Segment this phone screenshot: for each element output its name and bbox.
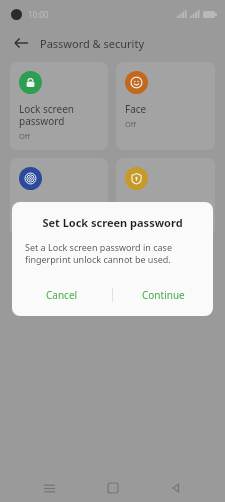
button[interactable]: Recents — [34, 474, 64, 502]
button[interactable]: Face — [116, 62, 215, 150]
staticText: Off — [125, 119, 137, 129]
staticText: Cancel — [46, 288, 78, 302]
staticText: Off — [19, 131, 31, 141]
staticText: System security — [12, 254, 86, 268]
staticText: Lock screen password — [19, 102, 75, 128]
button[interactable]: Back — [10, 32, 32, 54]
staticText: Set a Lock screen password in case finge… — [25, 241, 200, 266]
button[interactable]: Home — [98, 474, 128, 502]
button[interactable]: System security — [0, 244, 225, 278]
button[interactable]: Lock screen password — [10, 62, 108, 150]
staticText: Password & security — [40, 36, 145, 51]
button[interactable]: Cancel — [12, 280, 112, 310]
staticText: Continue — [142, 288, 185, 302]
button[interactable] — [10, 158, 108, 236]
button[interactable] — [116, 158, 215, 236]
staticText: Set Lock screen password — [22, 215, 203, 230]
staticText: Face — [125, 102, 147, 116]
button[interactable]: Back — [161, 474, 191, 502]
button[interactable]: Continue — [113, 280, 213, 310]
staticText: 10:00 — [28, 9, 49, 20]
